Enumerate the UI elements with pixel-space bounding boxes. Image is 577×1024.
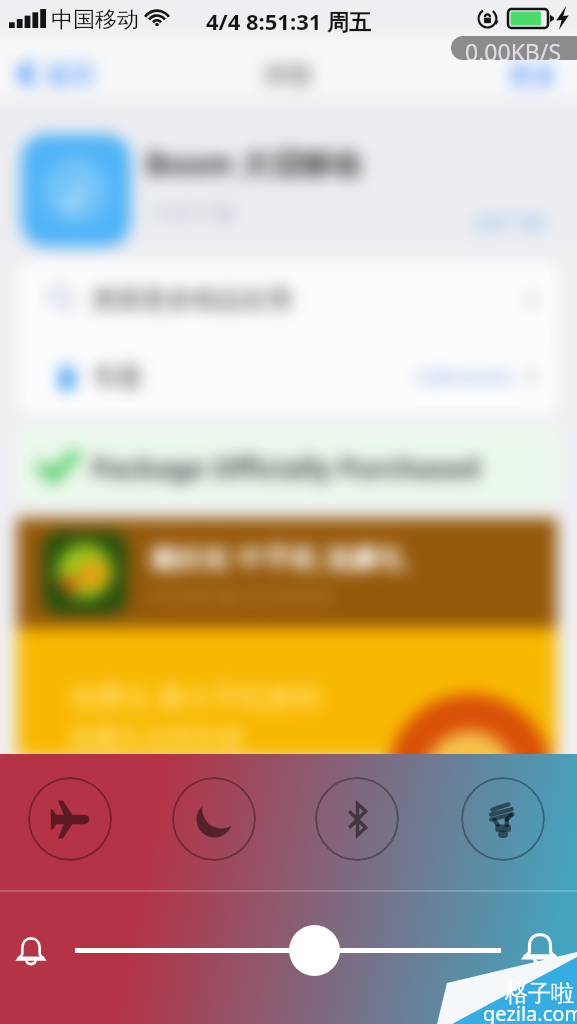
button[interactable]: Minimum brightness xyxy=(17,937,45,965)
staticText: 428results xyxy=(416,363,514,390)
button[interactable]: Bluetooth xyxy=(315,777,399,861)
staticText: 邀好友 中手机 送豪礼 xyxy=(149,539,407,576)
button[interactable]: Airplane mode xyxy=(28,777,112,861)
button[interactable]: Maximum brightness xyxy=(523,933,557,964)
staticText: 海量礼包等你拿 xyxy=(69,723,244,754)
staticText: Boom 大话移动 xyxy=(146,143,361,184)
staticText: gezila.com xyxy=(483,1000,577,1024)
staticText: 中国移动 xyxy=(51,6,139,34)
staticText: 专题 xyxy=(92,361,142,392)
staticText: 详情 xyxy=(262,60,312,91)
staticText: 4/4 8:51:31 周五 xyxy=(206,6,372,36)
button[interactable]: Brightness slider xyxy=(289,925,340,976)
staticText: 立即下载 xyxy=(472,212,544,235)
staticText: 格子啦 xyxy=(505,979,574,1008)
staticText: 搜索更多精品应用 xyxy=(92,284,292,315)
button[interactable]: Flashlight xyxy=(461,777,545,861)
staticText: 返回 xyxy=(45,59,95,89)
staticText: 免费兑 最火手机游戏 xyxy=(69,678,320,715)
button[interactable]: Do not disturb xyxy=(172,777,256,861)
staticText: 7.8万下载 xyxy=(151,200,235,226)
staticText: Package Officially Purchased xyxy=(92,449,480,486)
staticText: 更多 xyxy=(508,60,558,91)
staticText: 0.00KB/S xyxy=(465,36,562,60)
